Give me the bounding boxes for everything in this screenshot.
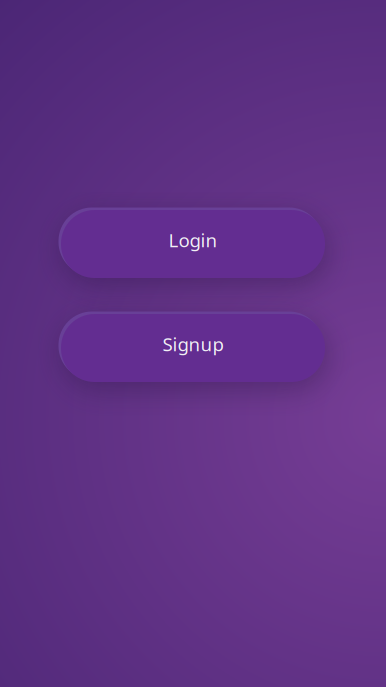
button[interactable]: Signup	[61, 314, 325, 382]
button[interactable]: Login	[61, 210, 325, 278]
staticText: Login	[168, 228, 217, 252]
staticText: Signup	[162, 332, 223, 356]
